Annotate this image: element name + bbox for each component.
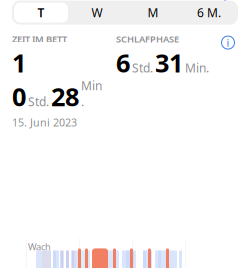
button[interactable]: Daten hinzufügen	[166, 0, 250, 3]
button[interactable]: M	[126, 3, 180, 23]
staticText: i	[226, 35, 229, 50]
staticText: T	[37, 5, 44, 20]
staticText: 6 M.	[197, 5, 221, 20]
button[interactable]: Information	[218, 33, 238, 53]
staticText: ZEIT IM BETT	[12, 33, 67, 45]
button[interactable]: 6 M.	[182, 3, 236, 23]
staticText: M	[147, 5, 158, 20]
staticText: Min.	[185, 60, 209, 76]
staticText: 15. Juni 2023	[12, 115, 77, 129]
staticText: Std.	[28, 94, 49, 109]
button[interactable]: T	[14, 3, 68, 23]
staticText: 28	[51, 80, 79, 113]
staticText: 31	[155, 46, 183, 80]
staticText: Wach	[28, 240, 51, 253]
button[interactable]: W	[70, 3, 124, 23]
staticText: 6	[116, 46, 130, 80]
staticText: W	[91, 5, 102, 20]
staticText: 10	[12, 46, 26, 113]
staticText: Daten hinzufügen	[166, 0, 244, 3]
staticText: Std.	[132, 60, 153, 76]
staticText: Min.	[81, 78, 102, 110]
staticText: SCHLAFPHASE	[116, 33, 179, 45]
